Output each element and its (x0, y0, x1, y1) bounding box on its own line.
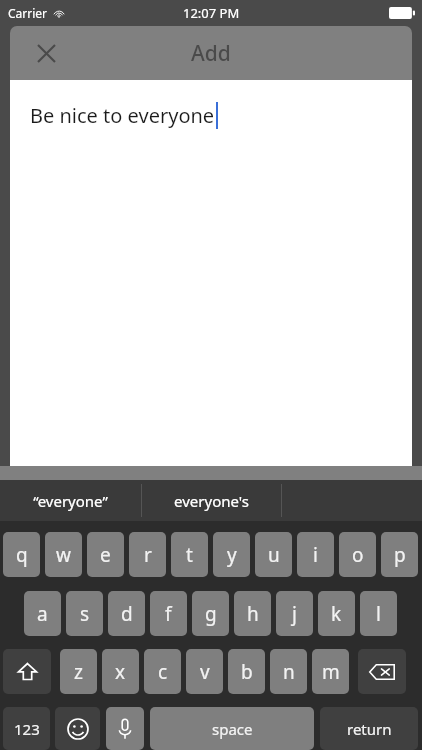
button[interactable]: Backspace (358, 649, 406, 694)
button[interactable]: w (45, 532, 82, 577)
button[interactable]: Shift (3, 649, 51, 694)
button[interactable]: everyone's (142, 480, 281, 521)
staticText: h (247, 601, 259, 627)
button[interactable]: l (360, 591, 397, 636)
button[interactable]: 123 (3, 707, 50, 750)
staticText: y (227, 542, 237, 568)
button[interactable]: z (60, 649, 97, 694)
staticText: 123 (14, 719, 40, 739)
staticText: t (186, 542, 193, 568)
staticText: a (37, 601, 48, 627)
staticText: r (144, 542, 152, 568)
staticText: m (322, 659, 340, 685)
button[interactable]: m (312, 649, 349, 694)
staticText: c (158, 659, 168, 685)
staticText: 12:07 PM (183, 4, 240, 22)
button[interactable]: n (270, 649, 307, 694)
staticText: d (121, 601, 133, 627)
button[interactable]: b (228, 649, 265, 694)
button[interactable]: d (108, 591, 145, 636)
staticText: b (241, 659, 253, 685)
staticText: e (100, 542, 111, 568)
staticText: w (56, 542, 71, 568)
staticText: i (313, 542, 318, 568)
button[interactable]: g (192, 591, 229, 636)
staticText: v (200, 659, 210, 685)
button[interactable]: h (234, 591, 271, 636)
button[interactable]: space (150, 707, 314, 750)
button[interactable]: t (171, 532, 208, 577)
button[interactable]: “everyone” (0, 480, 141, 521)
staticText: everyone's (174, 491, 249, 511)
staticText: o (352, 542, 364, 568)
button[interactable]: r (129, 532, 166, 577)
staticText: Carrier (8, 5, 48, 21)
button[interactable]: o (339, 532, 376, 577)
staticText: Be nice to everyone (30, 102, 215, 129)
staticText: “everyone” (33, 491, 108, 511)
button[interactable]: c (144, 649, 181, 694)
staticText: k (331, 601, 342, 627)
staticText: z (74, 659, 83, 685)
button[interactable]: return (320, 707, 418, 750)
button[interactable]: x (102, 649, 139, 694)
staticText: return (347, 719, 392, 739)
button[interactable]: q (3, 532, 40, 577)
staticText: space (212, 719, 253, 739)
button[interactable]: i (297, 532, 334, 577)
staticText: j (292, 601, 297, 627)
button[interactable]: v (186, 649, 223, 694)
button[interactable]: e (87, 532, 124, 577)
staticText: f (165, 601, 172, 627)
staticText: l (376, 601, 381, 627)
staticText: s (80, 601, 90, 627)
button[interactable]: a (24, 591, 61, 636)
staticText: p (394, 542, 406, 568)
staticText: x (115, 659, 126, 685)
button[interactable]: f (150, 591, 187, 636)
button[interactable]: k (318, 591, 355, 636)
staticText: g (205, 601, 217, 627)
button[interactable]: p (381, 532, 418, 577)
button[interactable]: s (66, 591, 103, 636)
button[interactable]: y (213, 532, 250, 577)
button[interactable]: u (255, 532, 292, 577)
button[interactable]: Close (26, 33, 66, 73)
staticText: Add (191, 39, 231, 68)
staticText: q (16, 542, 28, 568)
staticText: u (268, 542, 280, 568)
button[interactable]: Emoji (55, 707, 100, 750)
button[interactable]: Voice input (106, 707, 144, 750)
button[interactable]: j (276, 591, 313, 636)
staticText: n (283, 659, 295, 685)
